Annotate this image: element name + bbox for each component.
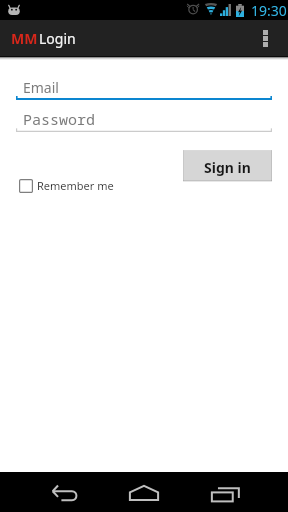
staticText: Remember me [37, 178, 114, 193]
button[interactable]: Recent apps [193, 474, 257, 512]
staticText: Sign in [204, 158, 251, 177]
staticText: Login [39, 29, 76, 48]
button[interactable]: Back [32, 474, 96, 512]
button[interactable]: Sign in [183, 150, 272, 182]
staticText: MM [11, 29, 38, 48]
button[interactable]: Password [23, 109, 96, 129]
button[interactable]: Home [112, 473, 176, 512]
button[interactable]: Remember me [19, 178, 114, 193]
button[interactable]: Email [23, 78, 59, 97]
staticText: 19:30 [251, 1, 287, 20]
button[interactable]: More options [249, 20, 283, 57]
